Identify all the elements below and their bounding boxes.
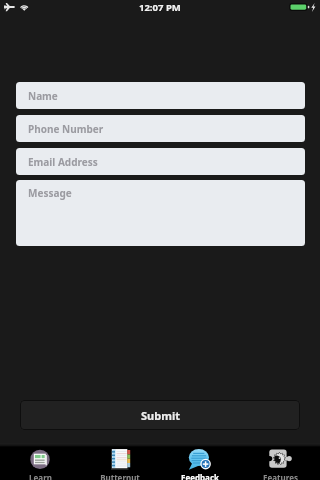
staticText: 12:07 PM [139, 1, 181, 14]
staticText: Message [28, 186, 72, 200]
button[interactable]: Features [240, 447, 320, 480]
staticText: Features [263, 472, 298, 480]
button[interactable]: Phone Number [16, 115, 305, 142]
staticText: Butternut [100, 472, 140, 480]
staticText: Learn [29, 472, 52, 480]
button[interactable]: Email Address [16, 148, 305, 175]
button[interactable]: Name [16, 82, 305, 109]
button[interactable]: Submit [20, 400, 300, 430]
staticText: Phone Number [28, 122, 104, 136]
button[interactable]: Feedback [160, 447, 240, 480]
staticText: Feedback [181, 472, 219, 480]
button[interactable]: Learn [0, 447, 80, 480]
staticText: Name [28, 89, 58, 103]
button[interactable]: Butternut [80, 447, 160, 480]
button[interactable]: Message [16, 180, 305, 246]
staticText: Email Address [28, 155, 98, 169]
staticText: Submit [141, 408, 180, 423]
